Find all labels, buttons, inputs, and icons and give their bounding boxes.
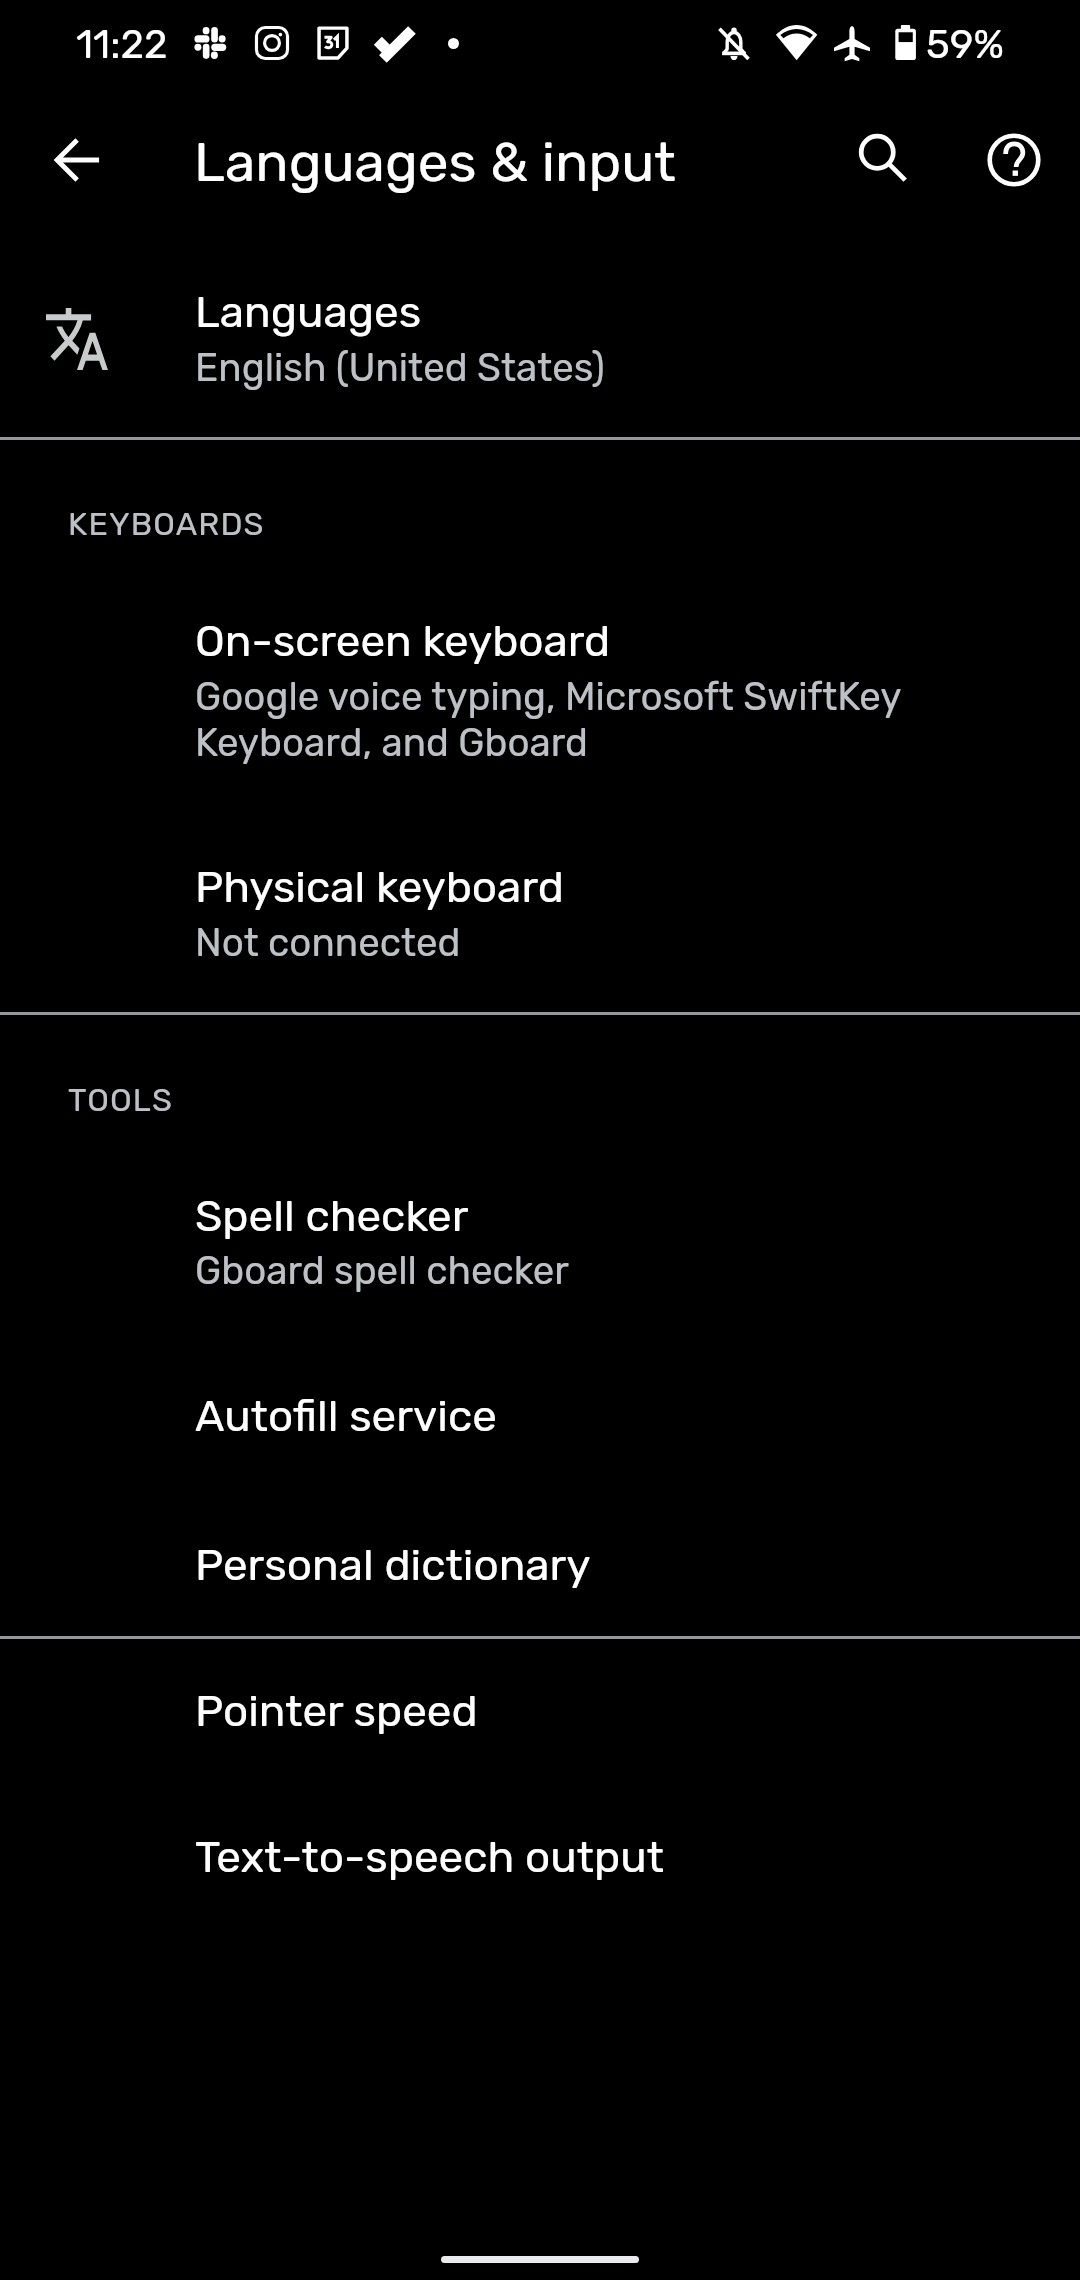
button[interactable]: Text-to-speech output [0,1796,1080,1916]
staticText: Physical keyboard [195,861,564,913]
button[interactable]: Help [972,118,1056,202]
staticText: English (United States) [195,345,605,391]
staticText: 59% [926,21,1004,68]
staticText: Keyboard, and Gboard [195,720,588,766]
staticText: Google voice typing, Microsoft SwiftKey [195,674,902,720]
button[interactable]: Languages [0,250,1080,426]
button[interactable]: On-screen keyboard [0,570,1080,810]
button[interactable]: Autofill service [0,1355,1080,1475]
staticText: Pointer speed [195,1685,478,1737]
staticText: Languages & input [194,130,676,195]
button[interactable]: Navigate up [41,122,117,198]
staticText: TOOLS [68,1081,174,1119]
staticText: Languages [195,286,422,338]
staticText: Spell checker [195,1190,469,1242]
staticText: On-screen keyboard [195,615,611,667]
staticText: Text-to-speech output [195,1831,664,1883]
staticText: Personal dictionary [195,1539,591,1591]
staticText: Autofill service [195,1390,497,1442]
staticText: 11:22 [76,21,168,68]
button[interactable]: Physical keyboard [0,830,1080,1005]
button[interactable]: Personal dictionary [0,1503,1080,1623]
staticText: KEYBOARDS [68,505,265,543]
staticText: Gboard spell checker [195,1248,569,1294]
button[interactable]: Pointer speed [0,1650,1080,1770]
button[interactable]: Search [840,115,924,199]
button[interactable]: Spell checker [0,1150,1080,1330]
staticText: Not connected [195,920,461,966]
